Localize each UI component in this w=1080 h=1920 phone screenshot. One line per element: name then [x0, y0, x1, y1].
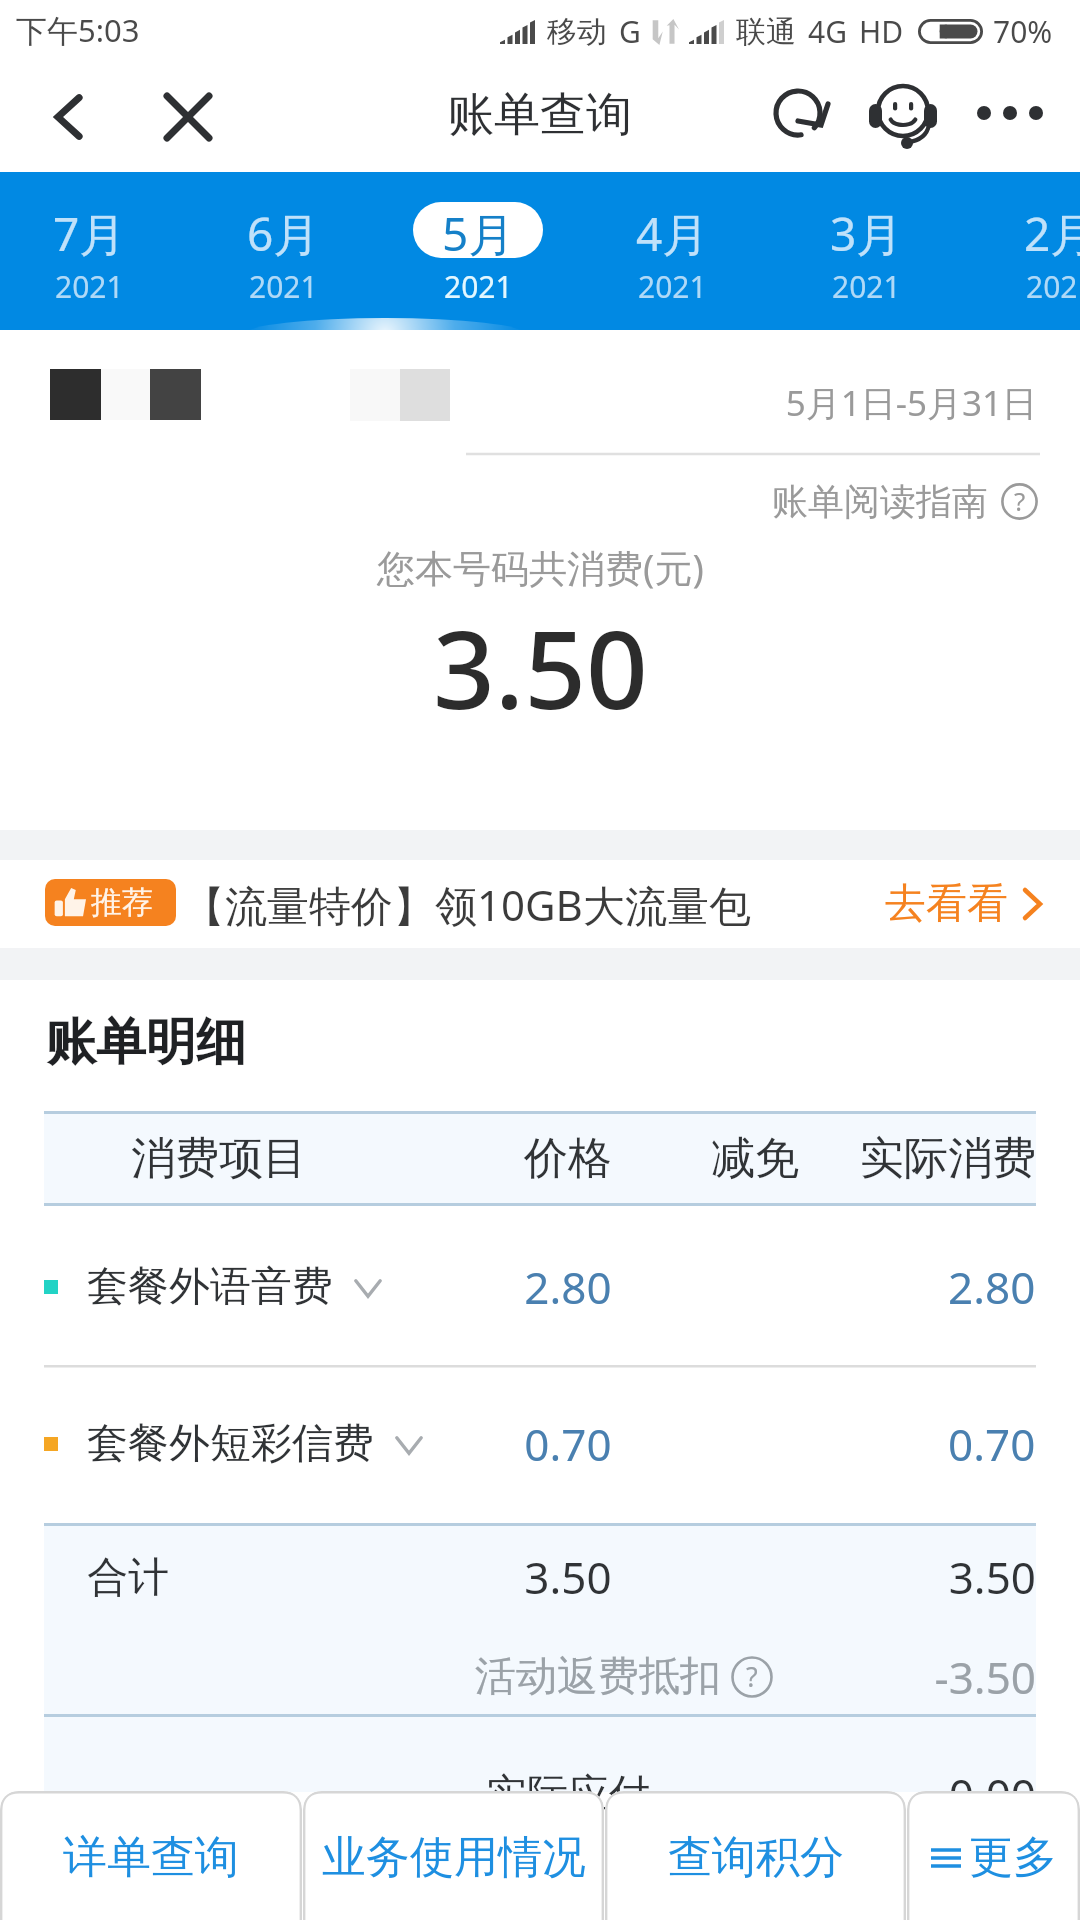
staticText: 2.80: [498, 1257, 638, 1317]
button[interactable]: 更多: [907, 1791, 1080, 1920]
staticText: 账单明细: [46, 1011, 246, 1074]
staticText: 联通: [736, 13, 796, 51]
button[interactable]: 详单查询: [0, 1791, 302, 1920]
staticText: 下午5:03: [16, 9, 140, 51]
staticText: 活动返费抵扣: [475, 1651, 721, 1703]
staticText: 7月: [53, 202, 126, 258]
staticText: 0.00: [816, 1764, 1036, 1824]
staticText: 0.70: [498, 1414, 638, 1474]
staticText: 查询积分: [668, 1830, 844, 1885]
button[interactable]: Refresh: [752, 65, 848, 161]
button[interactable]: Customer service: [855, 65, 951, 161]
staticText: 业务使用情况: [322, 1830, 586, 1885]
staticText: 消费项目: [131, 1131, 307, 1186]
staticText: 2021: [832, 266, 901, 307]
staticText: 套餐外语音费: [87, 1261, 333, 1313]
button[interactable]: 查询积分: [605, 1791, 906, 1920]
staticText: 2.80: [948, 1257, 1036, 1317]
staticText: 2021: [1026, 266, 1080, 307]
button[interactable]: 套餐外短彩信费: [44, 1404, 1036, 1484]
staticText: 实际消费: [860, 1131, 1036, 1186]
button[interactable]: 3月: [770, 172, 962, 330]
staticText: 去看看: [885, 878, 1008, 930]
staticText: 2021: [444, 266, 513, 307]
button[interactable]: 业务使用情况: [303, 1791, 604, 1920]
staticText: 0.70: [948, 1414, 1036, 1474]
staticText: 您本号码共消费(元): [377, 541, 704, 593]
staticText: 套餐外短彩信费: [87, 1418, 374, 1470]
staticText: 2021: [638, 266, 707, 307]
staticText: 2021: [249, 266, 318, 307]
button[interactable]: 2月: [964, 172, 1080, 330]
staticText: 70%: [993, 11, 1053, 52]
staticText: -3.50: [44, 1647, 1036, 1707]
staticText: 4月: [636, 202, 709, 258]
staticText: ?: [746, 1658, 758, 1695]
button[interactable]: Back: [21, 69, 117, 165]
staticText: 移动: [547, 13, 607, 51]
staticText: 合计: [87, 1552, 169, 1604]
staticText: 3.50: [498, 1547, 638, 1607]
staticText: ?: [1014, 483, 1026, 518]
button[interactable]: 账单阅读指南: [772, 479, 1038, 524]
staticText: 5月1日-5月31日: [0, 379, 1037, 427]
staticText: 账单查询: [448, 86, 632, 144]
staticText: HD: [859, 11, 904, 52]
staticText: 6月: [247, 202, 320, 258]
staticText: 2021: [55, 266, 124, 307]
staticText: 【流量特价】领10GB大流量包: [183, 876, 751, 933]
staticText: 账单阅读指南: [772, 479, 988, 524]
staticText: 实际应付: [468, 1769, 668, 1821]
staticText: 减免: [705, 1131, 805, 1186]
staticText: G: [619, 11, 641, 52]
staticText: 详单查询: [63, 1830, 239, 1885]
button[interactable]: 4月: [576, 172, 768, 330]
staticText: 推荐: [91, 883, 153, 922]
button[interactable]: 5月: [382, 172, 574, 330]
button[interactable]: 6月: [187, 172, 379, 330]
button[interactable]: 推荐: [0, 860, 1080, 948]
staticText: 4G: [808, 11, 847, 52]
button[interactable]: Close: [140, 69, 236, 165]
button[interactable]: More options: [962, 65, 1058, 161]
staticText: 2月: [1024, 202, 1080, 258]
button[interactable]: 7月: [0, 172, 185, 330]
staticText: 3.50: [433, 594, 648, 741]
staticText: 5月: [442, 202, 515, 258]
staticText: 价格: [518, 1131, 618, 1186]
staticText: 更多: [969, 1830, 1057, 1885]
staticText: 3.50: [44, 1547, 1036, 1607]
button[interactable]: 套餐外语音费: [44, 1247, 1036, 1327]
staticText: 3月: [830, 202, 903, 258]
